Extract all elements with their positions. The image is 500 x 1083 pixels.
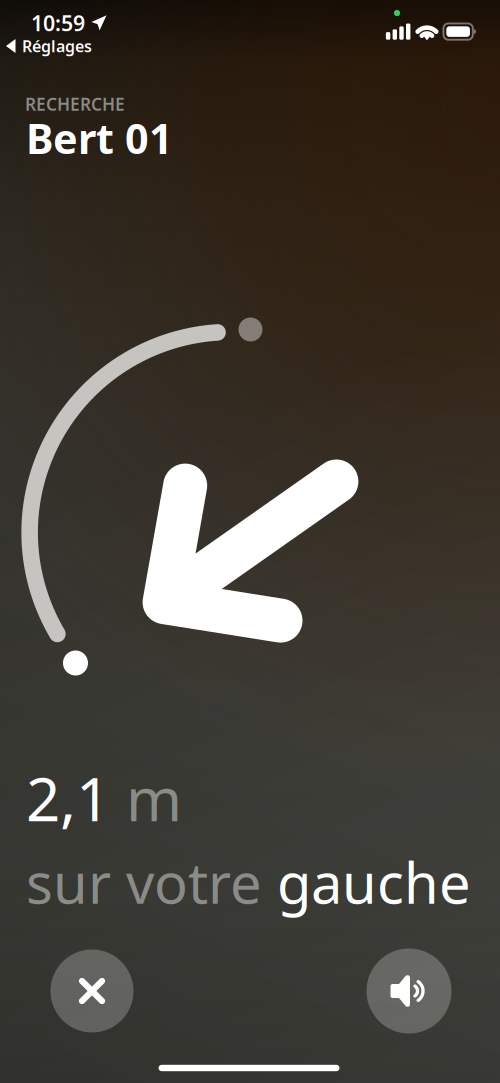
button[interactable]: Retour vers Réglages: [0, 29, 102, 63]
staticText: 10:59: [31, 9, 85, 37]
staticText: gauche: [277, 845, 471, 919]
staticText: sur votre: [26, 845, 277, 919]
staticText: m: [126, 758, 182, 838]
staticText: Réglages: [22, 35, 92, 57]
button[interactable]: Émettre un son: [366, 948, 451, 1033]
button[interactable]: Arrêter la recherche: [50, 949, 133, 1032]
staticText: Bert 01: [26, 111, 173, 165]
staticText: RECHERCHE: [25, 92, 125, 115]
staticText: 2,1: [26, 758, 126, 838]
